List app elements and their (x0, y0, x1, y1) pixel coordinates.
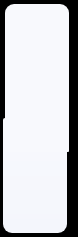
button[interactable]: Upper content panel (5, 4, 69, 152)
button[interactable]: Lower content panel (3, 118, 67, 233)
